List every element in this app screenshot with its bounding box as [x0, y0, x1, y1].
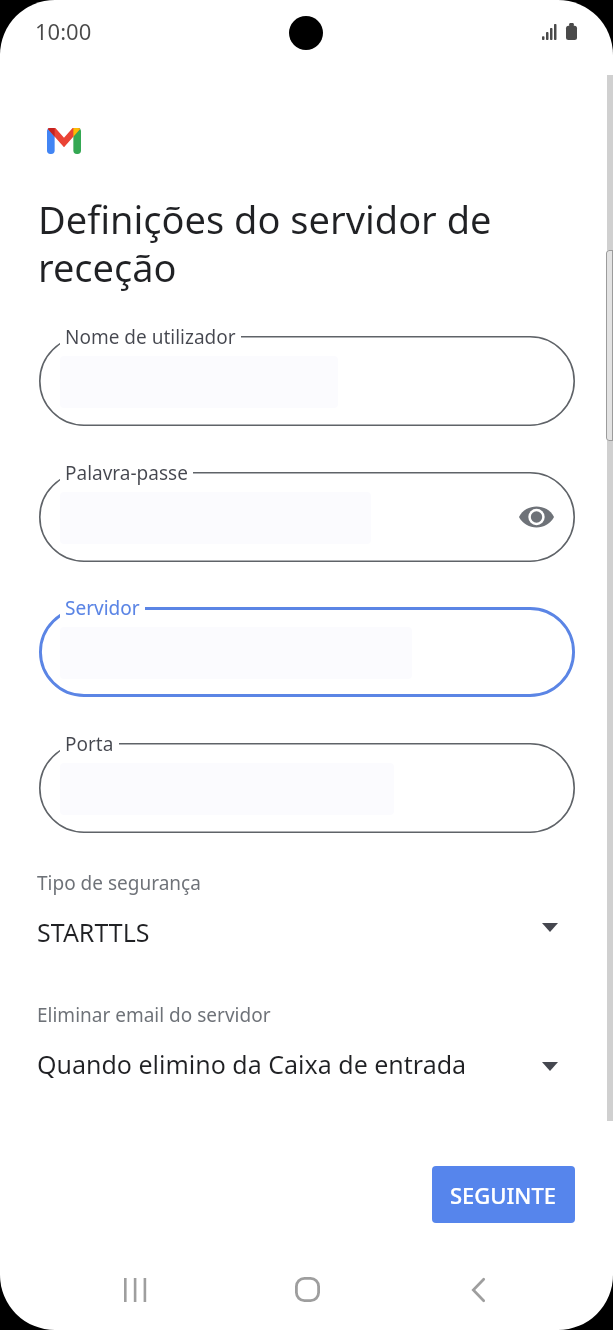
staticText: Tipo de segurança: [37, 870, 201, 896]
staticText: Eliminar email do servidor: [37, 1002, 271, 1028]
button[interactable]: Nome de utilizador: [39, 336, 575, 426]
staticText: SEGUINTE: [450, 1180, 557, 1210]
staticText: Definições do servidor de receção: [38, 193, 508, 293]
staticText: Quando elimino da Caixa de entrada: [37, 1047, 467, 1081]
button[interactable]: Home: [257, 1254, 358, 1325]
staticText: Palavra-passe: [65, 460, 188, 486]
button[interactable]: Tipo de segurança: [0, 870, 613, 968]
staticText: Servidor: [65, 595, 140, 621]
staticText: 10:00: [35, 16, 92, 46]
staticText: Nome de utilizador: [65, 324, 236, 350]
button[interactable]: Porta: [39, 743, 575, 833]
button[interactable]: Servidor: [39, 607, 575, 697]
button[interactable]: SEGUINTE: [432, 1166, 575, 1223]
button[interactable]: Eliminar email do servidor: [0, 1002, 613, 1100]
staticText: Porta: [65, 731, 114, 757]
button[interactable]: Back: [428, 1254, 529, 1325]
button[interactable]: Palavra-passe: [39, 472, 575, 562]
button[interactable]: Recent apps: [85, 1254, 186, 1325]
staticText: STARTTLS: [37, 915, 150, 949]
